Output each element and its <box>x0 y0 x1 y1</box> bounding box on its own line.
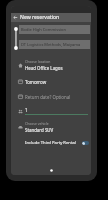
button[interactable]: Include Third Party Rental <box>11 136 91 150</box>
staticText: Tomorrow <box>25 79 47 85</box>
staticText: Bodie High Commission <box>21 27 66 32</box>
staticText: Include Third Party Rental <box>25 140 82 146</box>
button[interactable]: Tomorrow <box>11 74 91 89</box>
staticText: 1 <box>25 107 28 113</box>
button[interactable]: Choose location <box>11 56 91 74</box>
staticText: Choose vehicle <box>25 121 49 126</box>
button[interactable]: 1 <box>11 104 91 118</box>
staticText: Head Office Lagos <box>25 65 63 71</box>
staticText: Choose location <box>25 59 51 64</box>
button[interactable]: Choose vehicle <box>11 118 91 136</box>
staticText: Return date? Optional <box>25 94 71 100</box>
button[interactable]: Back <box>11 13 20 22</box>
button[interactable]: DT Logistics Methods, Maiyama <box>19 40 90 49</box>
button[interactable]: Bodie High Commission <box>19 25 90 34</box>
staticText: New reservation <box>20 14 60 21</box>
staticText: DT Logistics Methods, Maiyama <box>21 42 81 47</box>
staticText: Standard SUV <box>25 127 54 133</box>
button[interactable]: Return date? Optional <box>11 89 91 104</box>
